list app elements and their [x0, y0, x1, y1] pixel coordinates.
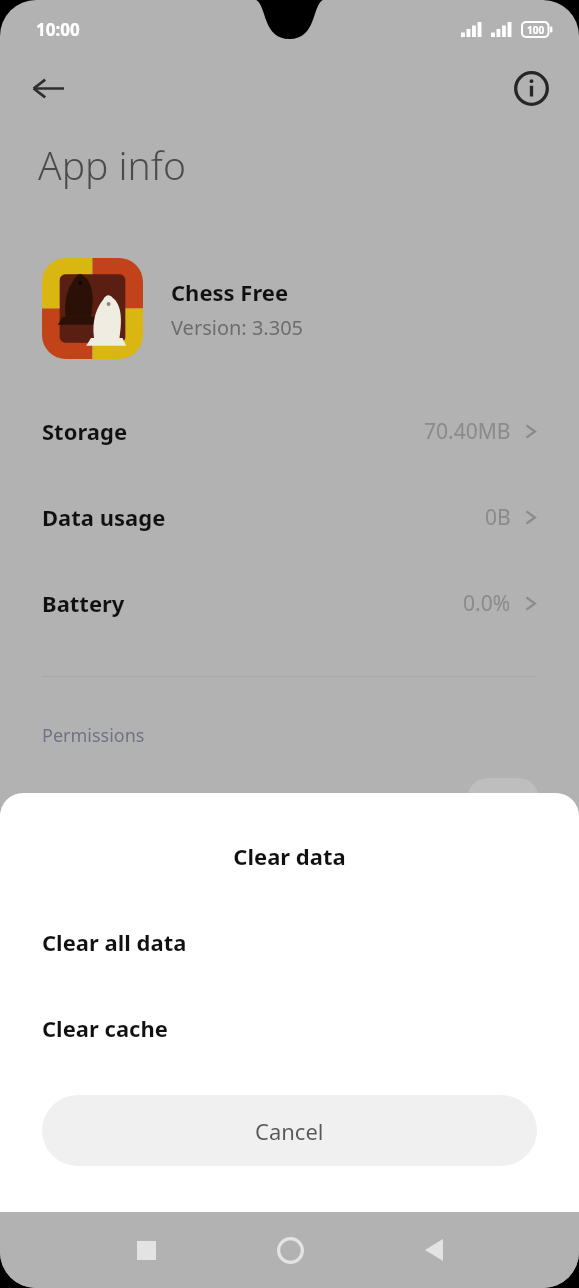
staticText: 100 [527, 23, 545, 37]
staticText: 70.40MB [424, 417, 511, 446]
staticText: Clear cache [42, 1013, 168, 1043]
button[interactable]: Recent apps [117, 1221, 175, 1279]
button[interactable]: Back [405, 1221, 463, 1279]
button[interactable]: Navigate back [22, 62, 74, 114]
button[interactable]: Storage [0, 388, 579, 474]
staticText: 0B [485, 503, 511, 532]
staticText: 10:00 [36, 18, 80, 41]
button[interactable]: Data usage [0, 474, 579, 560]
staticText: Version: 3.305 [171, 314, 304, 341]
staticText: Data usage [42, 502, 166, 532]
staticText: Battery [42, 588, 125, 618]
button[interactable]: Cancel [42, 1095, 537, 1166]
button[interactable]: Clear cache [0, 999, 579, 1057]
staticText: Clear data [0, 841, 579, 871]
staticText: Chess Free [171, 277, 289, 307]
staticText: Cancel [255, 1116, 324, 1146]
staticText: Clear all data [42, 927, 187, 957]
staticText: 0.0% [463, 589, 511, 618]
button[interactable]: App details info [505, 62, 557, 114]
staticText: App info [38, 138, 186, 191]
staticText: Storage [42, 416, 128, 446]
button[interactable]: Clear all data [0, 913, 579, 971]
button[interactable]: Battery [0, 560, 579, 646]
staticText: Permissions [42, 723, 145, 748]
button[interactable]: Home [261, 1221, 319, 1279]
